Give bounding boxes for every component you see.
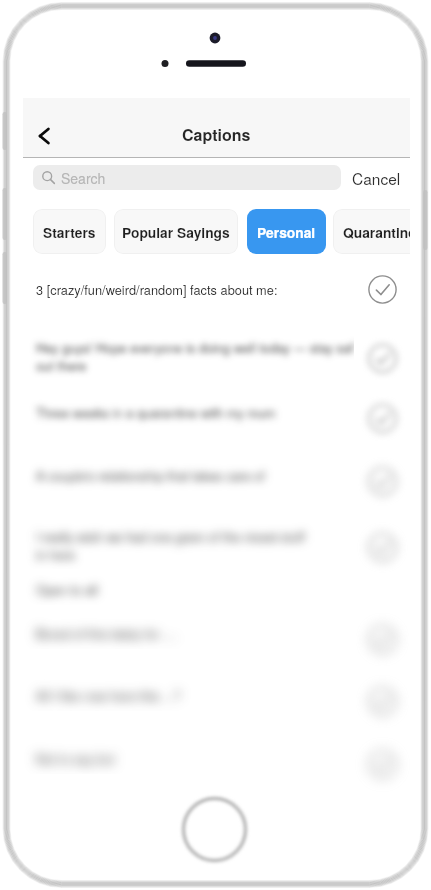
button[interactable]: All I like now here this ...? xyxy=(23,679,410,711)
button[interactable]: Bored of this lately for .... xyxy=(23,617,410,649)
button[interactable]: Search xyxy=(33,165,341,190)
staticText: Not to say but xyxy=(36,749,115,767)
staticText: Open to all xyxy=(36,580,98,598)
staticText: Personal xyxy=(257,222,316,242)
button[interactable]: 3 [crazy/fun/weird/random] facts about m… xyxy=(23,273,410,305)
staticText: Cancel xyxy=(352,167,401,189)
button[interactable]: Quarantine xyxy=(333,209,410,254)
staticText: All I like now here this ...? xyxy=(36,686,181,704)
staticText: Starters xyxy=(43,222,96,242)
button[interactable]: Hey guys! Hope everyone is doing well to… xyxy=(23,332,410,380)
staticText: out there xyxy=(36,356,87,374)
staticText: Captions xyxy=(182,123,251,146)
staticText: Search xyxy=(61,168,106,188)
staticText: A couple's relationship that takes care … xyxy=(36,466,265,484)
staticText: 3 [crazy/fun/weird/random] facts about m… xyxy=(36,280,278,298)
button[interactable]: Cancel xyxy=(349,164,404,191)
button[interactable]: Personal xyxy=(247,209,326,254)
button[interactable]: Not to say but xyxy=(23,742,410,774)
button[interactable]: Back xyxy=(29,121,59,151)
button[interactable]: Popular Sayings xyxy=(114,209,238,254)
staticText: I really wish we had one gram of the nic… xyxy=(36,527,305,545)
staticText: Quarantine xyxy=(343,222,410,242)
button[interactable]: Open to all xyxy=(23,573,410,605)
staticText: Hey guys! Hope everyone is doing well to… xyxy=(36,338,354,356)
button[interactable]: I really wish we had one gram of the nic… xyxy=(23,521,410,569)
button[interactable]: Starters xyxy=(33,209,106,254)
staticText: Bored of this lately for .... xyxy=(36,624,177,642)
button[interactable]: A couple's relationship that takes care … xyxy=(23,459,410,491)
staticText: Popular Sayings xyxy=(122,222,230,242)
button[interactable]: Three weeks in a quarantine with my mum xyxy=(23,396,410,428)
staticText: in here xyxy=(36,545,75,563)
staticText: Three weeks in a quarantine with my mum xyxy=(36,403,276,421)
